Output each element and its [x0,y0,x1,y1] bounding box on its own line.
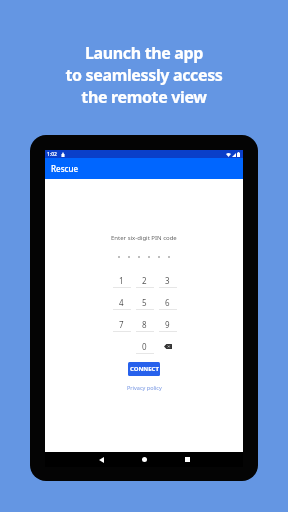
button[interactable]: 1 [110,274,133,296]
staticText: 6 [165,297,170,308]
staticText: Launch the app to seamlessly access the … [0,42,288,108]
button[interactable]: 6 [156,296,179,318]
button[interactable]: Rescue [45,158,243,179]
staticText: 2 [142,275,147,286]
button[interactable]: 2 [133,274,156,296]
button[interactable]: 3 [156,274,179,296]
button[interactable]: Recent apps [180,452,195,467]
staticText: CONNECT [130,365,159,373]
button[interactable]: Backspace [156,340,179,362]
staticText: 0 [142,341,147,352]
button[interactable]: Back [94,452,109,467]
button[interactable]: 7 [110,318,133,340]
button[interactable]: 9 [156,318,179,340]
staticText: 9 [165,319,170,330]
staticText: Rescue [51,163,79,174]
staticText: Privacy policy [127,384,162,391]
button[interactable]: CONNECT [128,362,160,376]
other: Backspace [164,344,172,349]
staticText: 1:02 [47,151,57,158]
staticText: 7 [119,319,124,330]
button[interactable]: 8 [133,318,156,340]
staticText: 8 [142,319,147,330]
staticText: 3 [165,275,170,286]
button[interactable]: Privacy policy [123,382,166,393]
staticText: 1 [119,275,124,286]
button[interactable]: 0 [133,340,156,362]
staticText: Enter six-digit PIN code [111,234,177,242]
staticText: 5 [142,297,147,308]
staticText: 4 [119,297,124,308]
button[interactable]: 5 [133,296,156,318]
button[interactable]: 4 [110,296,133,318]
button[interactable]: Home [137,452,152,467]
